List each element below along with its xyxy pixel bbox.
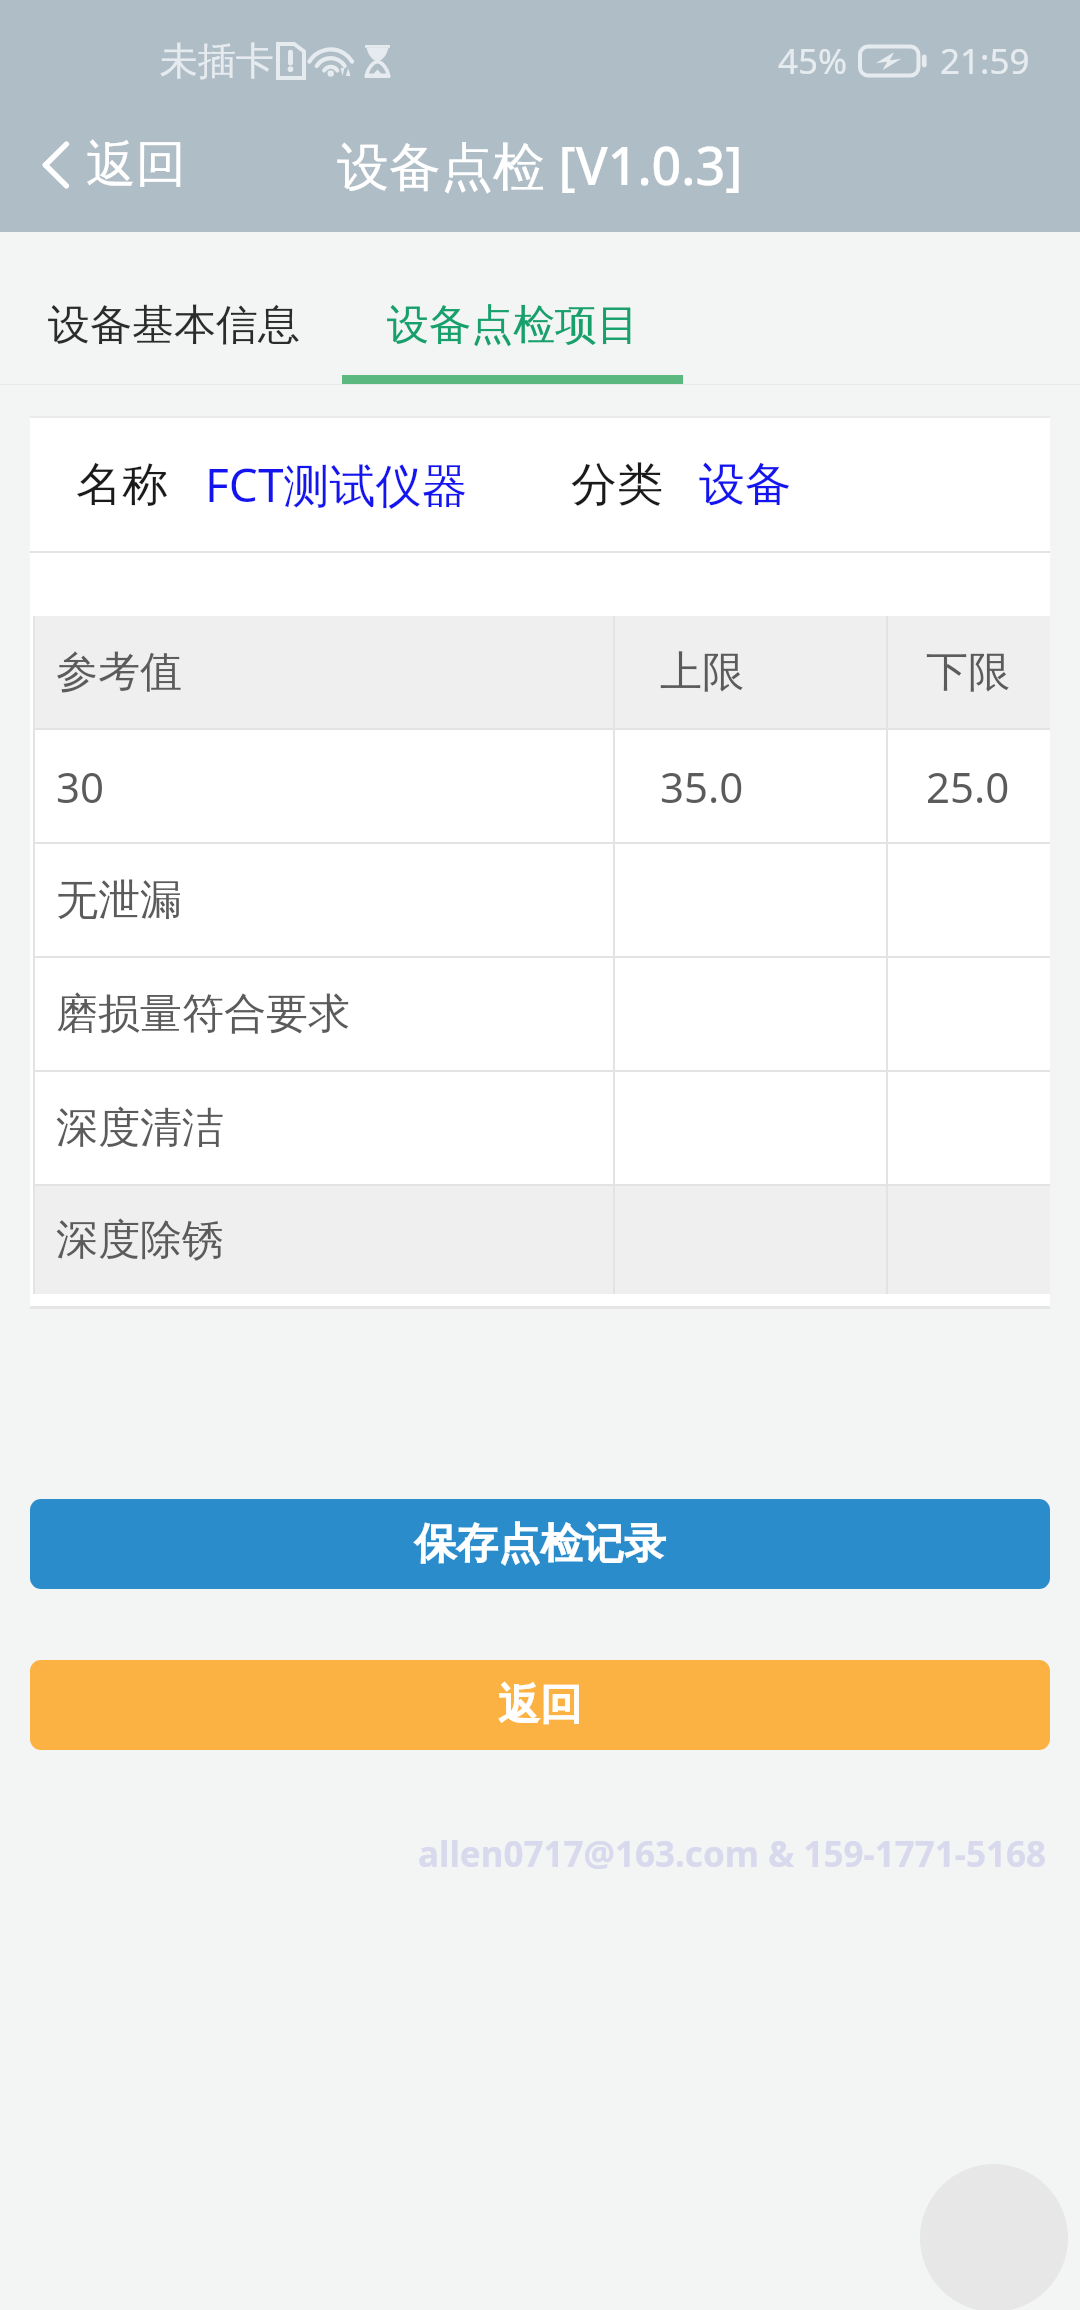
button[interactable]: 深度清洁 bbox=[33, 1072, 1050, 1184]
button[interactable]: Assistive touch bbox=[920, 2164, 1068, 2310]
staticText: 保存点检记录 bbox=[414, 1518, 666, 1571]
staticText: 45% bbox=[778, 37, 848, 85]
button[interactable]: 磨损量符合要求 bbox=[33, 958, 1050, 1070]
staticText: 返回 bbox=[498, 1679, 582, 1732]
button[interactable]: 设备基本信息 bbox=[0, 232, 342, 384]
button[interactable]: 保存点检记录 bbox=[30, 1499, 1050, 1589]
staticText: FCT测试仪器 bbox=[205, 453, 468, 516]
button[interactable]: 返回 bbox=[30, 1660, 1050, 1750]
staticText: 未插卡 bbox=[160, 37, 274, 85]
staticText: 设备点检项目 bbox=[387, 299, 639, 352]
staticText: 上限 bbox=[660, 646, 744, 699]
staticText: 返回 bbox=[86, 133, 186, 196]
staticText: 35.0 bbox=[660, 758, 744, 815]
button[interactable]: 30 bbox=[33, 730, 1050, 842]
staticText: 名称 bbox=[76, 456, 168, 514]
staticText: allen0717@163.com & 159-1771-5168 bbox=[0, 1830, 1046, 1878]
button[interactable]: 设备点检项目 bbox=[342, 232, 683, 384]
staticText: 设备点检 [V1.0.3] bbox=[337, 129, 743, 200]
staticText: 30 bbox=[56, 758, 105, 815]
button[interactable]: 深度除锈 bbox=[33, 1186, 1050, 1294]
staticText: 设备基本信息 bbox=[48, 299, 300, 352]
staticText: 21:59 bbox=[940, 37, 1030, 85]
staticText: 下限 bbox=[926, 646, 1010, 699]
button[interactable]: 参考值 bbox=[33, 616, 1050, 728]
staticText: 磨损量符合要求 bbox=[56, 988, 350, 1041]
button[interactable]: 返回 bbox=[0, 117, 214, 212]
staticText: 分类 bbox=[571, 456, 663, 514]
staticText: 25.0 bbox=[926, 758, 1010, 815]
button[interactable]: 无泄漏 bbox=[33, 844, 1050, 956]
staticText: 无泄漏 bbox=[56, 874, 182, 927]
staticText: 深度除锈 bbox=[56, 1214, 224, 1267]
staticText: 参考值 bbox=[56, 646, 182, 699]
staticText: 深度清洁 bbox=[56, 1102, 224, 1155]
staticText: 设备 bbox=[699, 456, 791, 514]
